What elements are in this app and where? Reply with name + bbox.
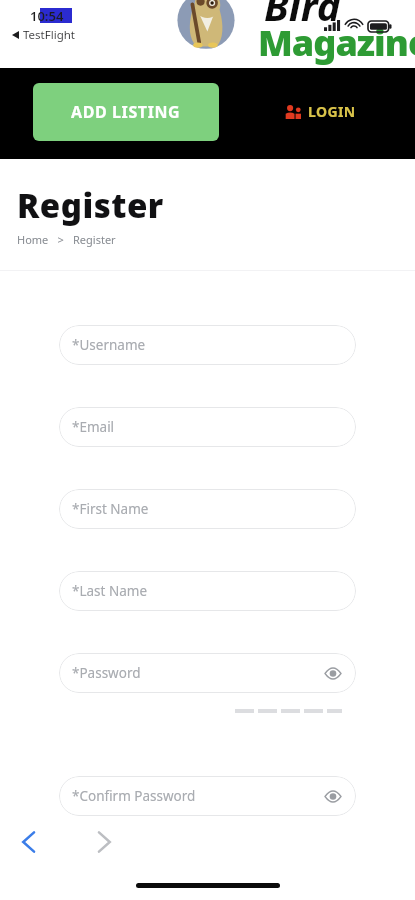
button[interactable]: Show password	[322, 662, 344, 684]
button[interactable]: Forward	[89, 827, 119, 857]
button[interactable]: *Last Name	[59, 571, 356, 611]
staticText: LOGIN	[308, 102, 356, 121]
button[interactable]: LOGIN	[283, 98, 358, 125]
button[interactable]: Home	[17, 232, 49, 247]
staticText: *First Name	[72, 500, 149, 518]
button[interactable]: *Username	[59, 325, 356, 365]
staticText: *Email	[72, 418, 115, 436]
staticText: Bird	[264, 0, 341, 32]
staticText: Register	[73, 232, 116, 247]
button[interactable]: *Email	[59, 407, 356, 447]
button[interactable]: ADD LISTING	[33, 83, 219, 141]
staticText: *Username	[72, 336, 146, 354]
staticText: Register	[17, 183, 164, 228]
staticText: *Confirm Password	[72, 787, 196, 805]
staticText: 10:54	[30, 7, 64, 25]
staticText: Magazine	[258, 18, 415, 67]
staticText: TestFlight	[23, 27, 75, 43]
button[interactable]: *Password	[59, 653, 356, 693]
staticText: *Password	[72, 664, 141, 682]
button[interactable]: Back	[14, 827, 44, 857]
button[interactable]: *Confirm Password	[59, 776, 356, 816]
button[interactable]: Show password	[322, 785, 344, 807]
button[interactable]: *First Name	[59, 489, 356, 529]
staticText: ADD LISTING	[71, 101, 181, 123]
staticText: *Last Name	[72, 582, 148, 600]
staticText: >	[49, 232, 73, 247]
